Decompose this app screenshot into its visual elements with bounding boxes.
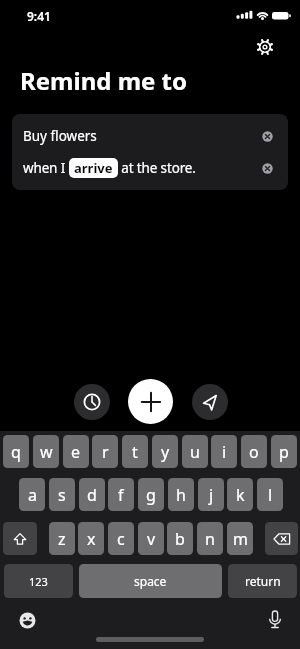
staticText: m: [233, 528, 248, 550]
button[interactable]: m: [227, 522, 253, 555]
staticText: a: [28, 484, 37, 506]
button[interactable]: d: [79, 478, 105, 511]
button[interactable]: g: [138, 478, 164, 511]
button[interactable]: q: [3, 435, 29, 468]
button[interactable]: h: [168, 478, 194, 511]
staticText: j: [209, 484, 214, 506]
button[interactable]: b: [167, 522, 193, 555]
button[interactable]: [266, 609, 284, 631]
staticText: e: [71, 441, 81, 463]
staticText: b: [175, 528, 185, 550]
button[interactable]: o: [241, 435, 267, 468]
button[interactable]: [3, 522, 37, 555]
button[interactable]: [128, 379, 173, 424]
staticText: l: [268, 484, 273, 506]
button[interactable]: [192, 384, 228, 420]
staticText: return: [245, 573, 281, 589]
button[interactable]: f: [108, 478, 134, 511]
button[interactable]: v: [138, 522, 164, 555]
button[interactable]: a: [19, 478, 45, 511]
button[interactable]: Buy flowers: [12, 120, 288, 152]
staticText: r: [102, 441, 109, 463]
staticText: Buy flowers: [23, 127, 97, 145]
button[interactable]: e: [63, 435, 89, 468]
staticText: z: [58, 528, 66, 550]
staticText: o: [249, 441, 259, 463]
button[interactable]: w: [33, 435, 59, 468]
button[interactable]: 123: [4, 564, 73, 598]
staticText: Remind me to: [20, 64, 188, 97]
staticText: f: [118, 484, 124, 506]
button[interactable]: k: [227, 478, 253, 511]
staticText: q: [11, 441, 21, 463]
button[interactable]: c: [108, 522, 134, 555]
button[interactable]: r: [92, 435, 118, 468]
staticText: t: [132, 441, 138, 463]
button[interactable]: u: [182, 435, 208, 468]
button[interactable]: space: [79, 564, 222, 598]
staticText: h: [176, 484, 186, 506]
staticText: w: [40, 441, 53, 463]
button[interactable]: n: [197, 522, 223, 555]
button[interactable]: [18, 611, 36, 629]
button[interactable]: z: [49, 522, 75, 555]
button[interactable]: when I: [12, 152, 288, 184]
button[interactable]: return: [228, 564, 297, 598]
button[interactable]: t: [122, 435, 148, 468]
staticText: space: [134, 573, 167, 589]
button[interactable]: j: [198, 478, 224, 511]
staticText: 123: [29, 574, 48, 589]
button[interactable]: l: [257, 478, 283, 511]
staticText: y: [161, 441, 170, 463]
button[interactable]: [265, 522, 298, 555]
button[interactable]: arrive: [69, 158, 118, 178]
staticText: 9:41: [27, 8, 51, 24]
staticText: c: [117, 528, 125, 550]
button[interactable]: s: [49, 478, 75, 511]
button[interactable]: [254, 36, 276, 58]
staticText: i: [222, 441, 227, 463]
button[interactable]: y: [152, 435, 178, 468]
staticText: s: [58, 484, 66, 506]
staticText: at the store.: [118, 159, 196, 177]
staticText: n: [205, 528, 215, 550]
button[interactable]: i: [211, 435, 237, 468]
staticText: when I: [23, 159, 69, 177]
button[interactable]: [74, 384, 110, 420]
staticText: v: [147, 528, 156, 550]
button[interactable]: x: [78, 522, 104, 555]
staticText: d: [87, 484, 97, 506]
button[interactable]: p: [271, 435, 297, 468]
button[interactable]: [262, 163, 273, 174]
button[interactable]: [262, 131, 273, 142]
staticText: k: [236, 484, 245, 506]
staticText: g: [146, 484, 156, 506]
staticText: x: [87, 528, 96, 550]
staticText: u: [190, 441, 200, 463]
staticText: p: [279, 441, 289, 463]
staticText: arrive: [74, 159, 113, 177]
